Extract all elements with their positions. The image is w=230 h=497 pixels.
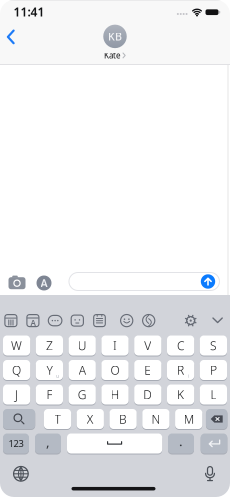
button[interactable]: S (200, 335, 227, 356)
staticText: . (179, 432, 183, 450)
staticText: Z (46, 337, 53, 353)
button[interactable]: Period (168, 433, 194, 454)
button[interactable]: Animoji (120, 314, 133, 327)
staticText: 123 (8, 437, 23, 450)
staticText: KB (108, 29, 122, 43)
staticText: U (78, 337, 87, 353)
button[interactable]: Messages (49, 314, 62, 327)
staticText: u (56, 372, 59, 379)
button[interactable]: Notes (93, 314, 106, 327)
button[interactable]: P (200, 359, 227, 381)
staticText: J (15, 386, 18, 402)
button[interactable]: U (69, 335, 96, 356)
button[interactable]: Next keyboard (13, 466, 28, 481)
button[interactable]: Memoji Stickers (71, 314, 84, 327)
button[interactable]: Back (6, 29, 15, 44)
button[interactable]: Comma (35, 433, 61, 454)
button[interactable]: N (142, 408, 169, 430)
staticText: 11:41 (13, 4, 44, 20)
staticText: O (110, 362, 119, 378)
button[interactable]: W (3, 335, 30, 356)
button[interactable]: K (167, 384, 194, 405)
staticText: A (30, 317, 35, 328)
button[interactable]: T (44, 408, 71, 430)
staticText: S (210, 337, 217, 353)
staticText: C (177, 337, 184, 353)
staticText: i (188, 372, 189, 379)
staticText: X (87, 411, 94, 427)
staticText: D (143, 386, 152, 402)
staticText: A (79, 362, 86, 378)
button[interactable]: D (134, 384, 161, 405)
staticText: P (210, 362, 217, 378)
button[interactable]: J (3, 384, 30, 405)
button[interactable]: B (109, 408, 137, 430)
button[interactable]: Store (4, 314, 17, 327)
button[interactable]: Z (36, 335, 63, 356)
staticText: , (46, 433, 50, 450)
button[interactable]: Space (67, 433, 162, 454)
staticText: Q (12, 362, 21, 378)
button[interactable]: Send (201, 274, 215, 289)
staticText: Kate (104, 50, 121, 61)
button[interactable]: Camera (8, 275, 26, 289)
button[interactable]: E (134, 359, 161, 381)
button[interactable]: App Store (26, 314, 39, 327)
button[interactable]: I (101, 335, 129, 356)
button[interactable]: Settings (184, 314, 197, 327)
button[interactable]: G (69, 384, 96, 405)
button[interactable]: Digital Touch (142, 314, 155, 327)
button[interactable]: Numbers (3, 433, 29, 454)
staticText: T (54, 411, 60, 427)
button[interactable]: Message text field (69, 272, 219, 290)
button[interactable]: C (167, 335, 194, 356)
button[interactable]: O (101, 359, 129, 381)
button[interactable]: X (77, 408, 104, 430)
staticText: E (144, 362, 151, 378)
button[interactable]: Dictate (204, 466, 216, 482)
staticText: N (151, 411, 160, 427)
button[interactable]: V (134, 335, 161, 356)
button[interactable]: R (167, 359, 194, 381)
staticText: B (119, 411, 127, 427)
staticText: V (144, 337, 151, 353)
staticText: W (11, 337, 22, 353)
staticText: I (113, 337, 117, 353)
button[interactable]: Search (3, 408, 35, 430)
button[interactable]: Return (201, 433, 227, 454)
button[interactable]: Y (36, 359, 63, 381)
button[interactable]: Conversation details (103, 25, 127, 61)
staticText: A (40, 276, 47, 290)
staticText: R (177, 362, 184, 378)
button[interactable]: F (36, 384, 63, 405)
staticText: M (184, 411, 194, 427)
button[interactable]: L (200, 384, 227, 405)
staticText: Y (46, 362, 52, 378)
button[interactable]: Hide app drawer (212, 317, 223, 324)
button[interactable]: Q (3, 359, 30, 381)
staticText: H (110, 386, 119, 402)
button[interactable]: Apps (36, 275, 51, 290)
staticText: G (78, 386, 87, 402)
button[interactable]: Delete (206, 408, 227, 430)
button[interactable]: M (175, 408, 202, 430)
staticText: F (46, 386, 52, 402)
button[interactable]: H (101, 384, 129, 405)
staticText: L (210, 386, 216, 402)
staticText: K (177, 386, 184, 402)
button[interactable]: A (69, 359, 96, 381)
